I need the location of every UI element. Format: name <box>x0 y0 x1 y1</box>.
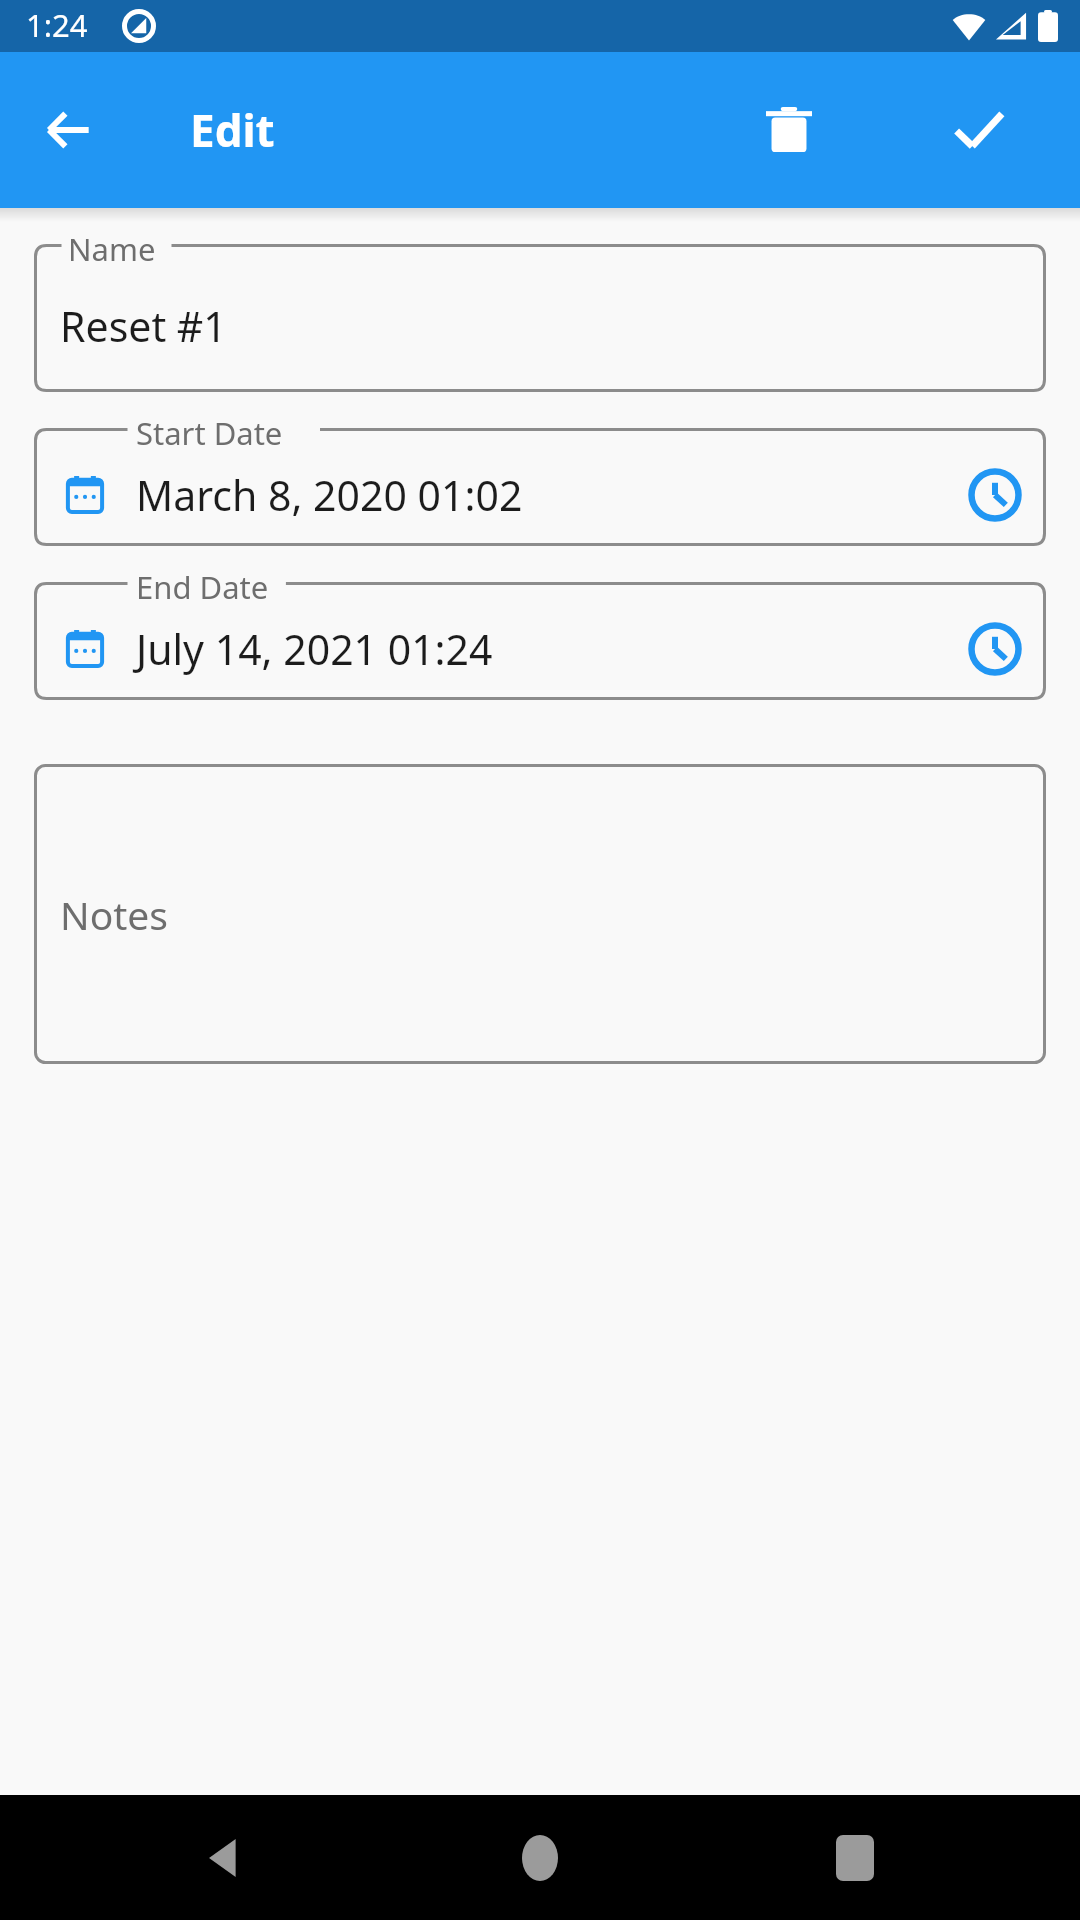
button[interactable]: Delete <box>746 87 832 173</box>
staticText: July 14, 2021 01:24 <box>136 621 493 677</box>
button[interactable]: Pick time <box>952 452 1038 538</box>
button[interactable]: Name <box>34 244 1046 392</box>
button[interactable]: Back <box>28 90 108 170</box>
button[interactable]: Home <box>490 1808 590 1908</box>
button[interactable]: Start Date <box>34 428 1046 546</box>
staticText: Name <box>68 228 156 270</box>
button[interactable]: Recent apps <box>805 1808 905 1908</box>
staticText: Reset #1 <box>60 298 227 354</box>
staticText: 1:24 <box>26 4 88 46</box>
button[interactable]: End Date <box>34 582 1046 700</box>
button[interactable]: Save <box>936 87 1022 173</box>
button[interactable]: Pick time <box>952 606 1038 692</box>
staticText: Edit <box>190 100 275 160</box>
staticText: Notes <box>60 888 168 941</box>
button[interactable]: Back <box>175 1808 275 1908</box>
staticText: March 8, 2020 01:02 <box>136 467 523 523</box>
button[interactable]: Notes <box>34 764 1046 1064</box>
staticText: End Date <box>136 566 269 608</box>
staticText: Start Date <box>136 412 283 454</box>
